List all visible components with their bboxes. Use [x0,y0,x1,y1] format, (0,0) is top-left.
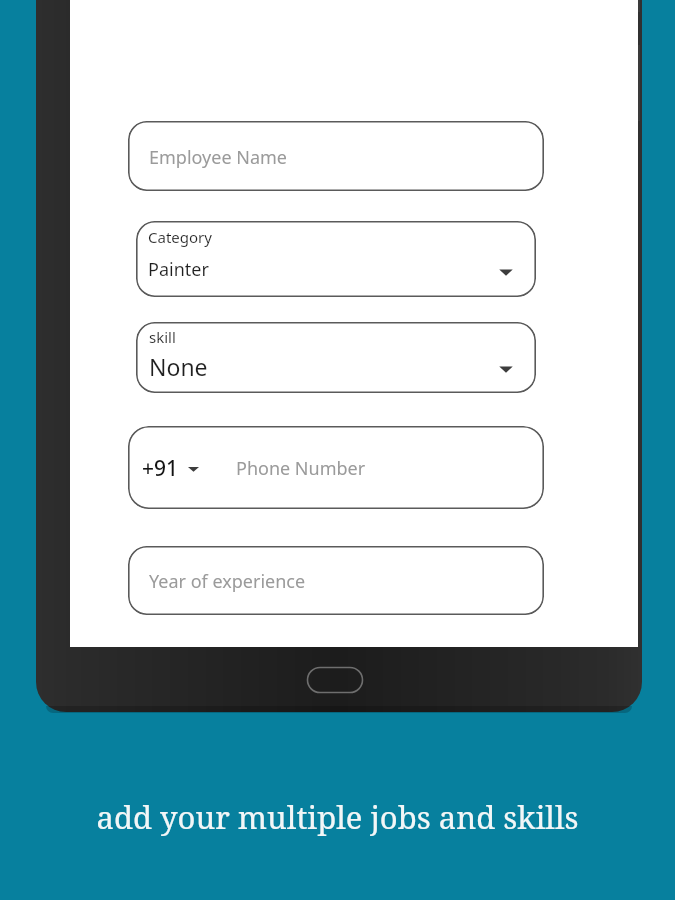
staticText: Category [148,227,212,247]
staticText: Employee Name [149,145,288,170]
button[interactable]: Home [307,667,363,693]
staticText: skill [149,327,176,347]
button[interactable]: Category [136,221,536,297]
staticText: Painter [148,257,209,282]
staticText: Year of experience [149,569,306,594]
staticText: +91 [142,454,179,483]
staticText: None [149,351,208,382]
button[interactable]: Employee Name [128,121,544,191]
staticText: add your multiple jobs and skills [0,796,675,846]
button[interactable]: skill [136,322,536,393]
staticText: Phone Number [236,456,366,481]
button[interactable]: Year of experience [128,546,544,615]
button[interactable]: Phone Number [128,426,544,509]
